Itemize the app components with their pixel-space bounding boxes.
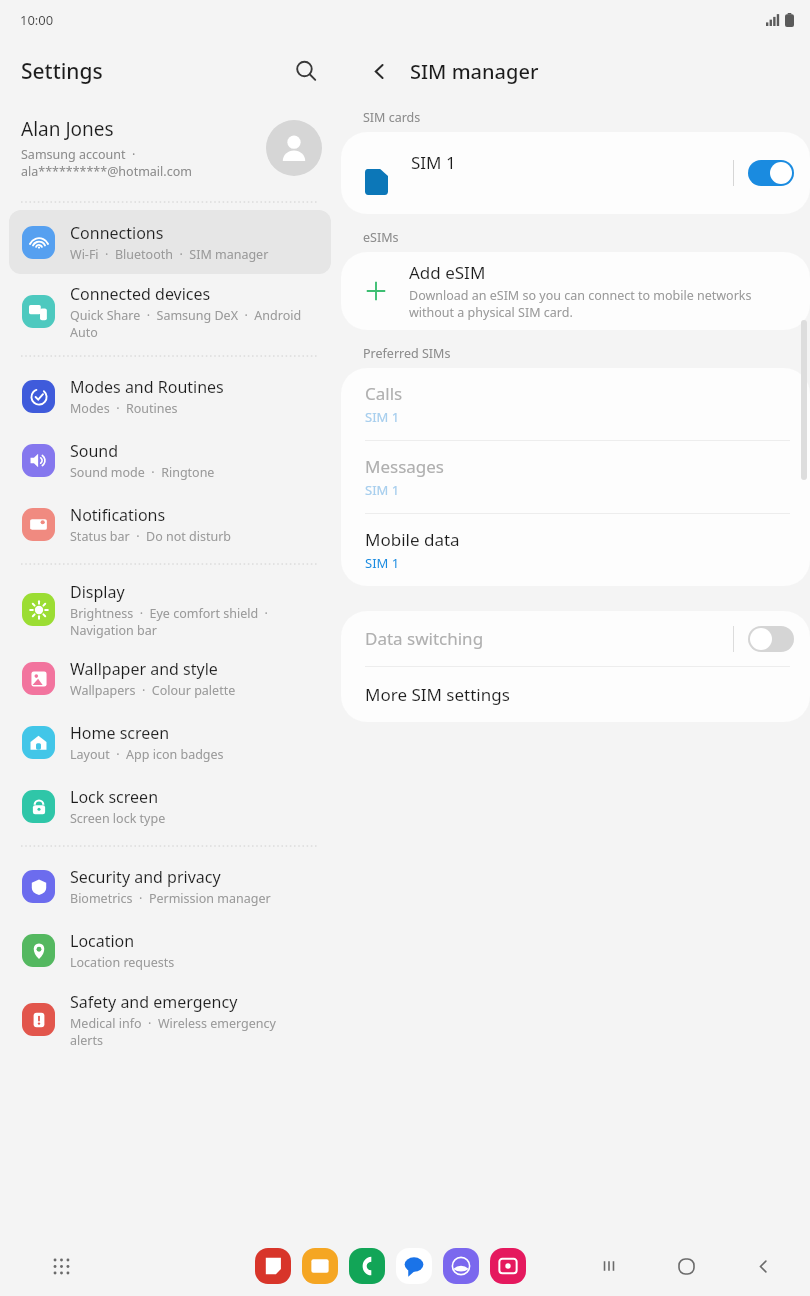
- staticText: Connections: [70, 222, 164, 244]
- staticText: Wallpaper and style: [70, 658, 218, 680]
- button[interactable]: Messages: [341, 441, 810, 513]
- button[interactable]: Display: [9, 572, 331, 646]
- button[interactable]: Internet: [443, 1248, 479, 1284]
- button[interactable]: Location: [9, 918, 331, 982]
- staticText: Status bar · Do not disturb: [70, 528, 232, 545]
- button[interactable]: Alan Jones: [0, 102, 340, 194]
- staticText: eSIMs: [363, 229, 399, 246]
- staticText: Modes and Routines: [70, 376, 224, 398]
- button[interactable]: Security and privacy: [9, 854, 331, 918]
- staticText: More SIM settings: [365, 683, 510, 706]
- staticText: Wi-Fi · Bluetooth · SIM manager: [70, 246, 269, 263]
- button[interactable]: Toggle on: [748, 160, 794, 186]
- button[interactable]: SIM 1: [341, 132, 810, 214]
- button[interactable]: Recents: [594, 1251, 624, 1281]
- button[interactable]: Modes and Routines: [9, 364, 331, 428]
- staticText: Screen lock type: [70, 810, 166, 827]
- staticText: SIM cards: [363, 109, 421, 126]
- button[interactable]: Back: [748, 1251, 778, 1281]
- staticText: SIM 1: [365, 554, 400, 572]
- staticText: Layout · App icon badges: [70, 746, 224, 763]
- staticText: Sound: [70, 440, 119, 462]
- button[interactable]: Search: [286, 51, 326, 91]
- staticText: Download an eSIM so you can connect to m…: [409, 287, 752, 321]
- button[interactable]: Add eSIM: [341, 252, 810, 330]
- staticText: Settings: [21, 57, 103, 86]
- staticText: Biometrics · Permission manager: [70, 890, 271, 907]
- staticText: SIM 1: [365, 481, 400, 499]
- button[interactable]: Camera: [490, 1248, 526, 1284]
- button[interactable]: Lock screen: [9, 774, 331, 838]
- button[interactable]: Notifications: [9, 492, 331, 556]
- staticText: Alan Jones: [21, 116, 114, 142]
- staticText: Sound mode · Ringtone: [70, 464, 215, 481]
- staticText: Connected devices: [70, 283, 211, 305]
- staticText: Modes · Routines: [70, 400, 178, 417]
- button[interactable]: Connections: [9, 210, 331, 274]
- staticText: Display: [70, 581, 125, 603]
- button[interactable]: Back: [362, 54, 396, 88]
- staticText: ala**********@hotmail.com: [21, 163, 192, 180]
- button[interactable]: Data switching: [341, 611, 810, 666]
- button[interactable]: Connected devices: [9, 274, 331, 348]
- staticText: Mobile data: [365, 528, 460, 551]
- staticText: Medical info · Wireless emergency alerts: [70, 1015, 276, 1048]
- button[interactable]: Messages: [396, 1248, 432, 1284]
- staticText: Home screen: [70, 722, 170, 744]
- staticText: Quick Share · Samsung DeX · Android Auto: [70, 307, 302, 340]
- staticText: SIM manager: [410, 58, 539, 85]
- button[interactable]: Apps: [44, 1249, 78, 1283]
- button[interactable]: Toggle off: [748, 626, 794, 652]
- staticText: 10:00: [20, 11, 54, 29]
- staticText: Add eSIM: [409, 261, 486, 284]
- staticText: Security and privacy: [70, 866, 221, 888]
- staticText: Brightness · Eye comfort shield · Naviga…: [70, 605, 268, 638]
- staticText: Location: [70, 930, 135, 952]
- staticText: Safety and emergency: [70, 991, 238, 1013]
- button[interactable]: Home: [671, 1251, 701, 1281]
- staticText: SIM 1: [411, 151, 456, 174]
- button[interactable]: Home screen: [9, 710, 331, 774]
- staticText: Samsung account ·: [21, 146, 136, 163]
- staticText: Notifications: [70, 504, 166, 526]
- button[interactable]: Sound: [9, 428, 331, 492]
- button[interactable]: Calls: [341, 368, 810, 440]
- staticText: Data switching: [365, 627, 484, 650]
- button[interactable]: My Files: [302, 1248, 338, 1284]
- button[interactable]: More SIM settings: [341, 667, 810, 722]
- staticText: Preferred SIMs: [363, 345, 451, 362]
- staticText: Lock screen: [70, 786, 159, 808]
- button[interactable]: Mobile data: [341, 514, 810, 586]
- staticText: SIM 1: [365, 408, 400, 426]
- staticText: Messages: [365, 455, 445, 478]
- button[interactable]: Phone: [349, 1248, 385, 1284]
- staticText: Wallpapers · Colour palette: [70, 682, 236, 699]
- button[interactable]: Safety and emergency: [9, 982, 331, 1056]
- button[interactable]: Samsung Notes: [255, 1248, 291, 1284]
- staticText: Calls: [365, 382, 403, 405]
- staticText: Location requests: [70, 954, 175, 971]
- button[interactable]: Wallpaper and style: [9, 646, 331, 710]
